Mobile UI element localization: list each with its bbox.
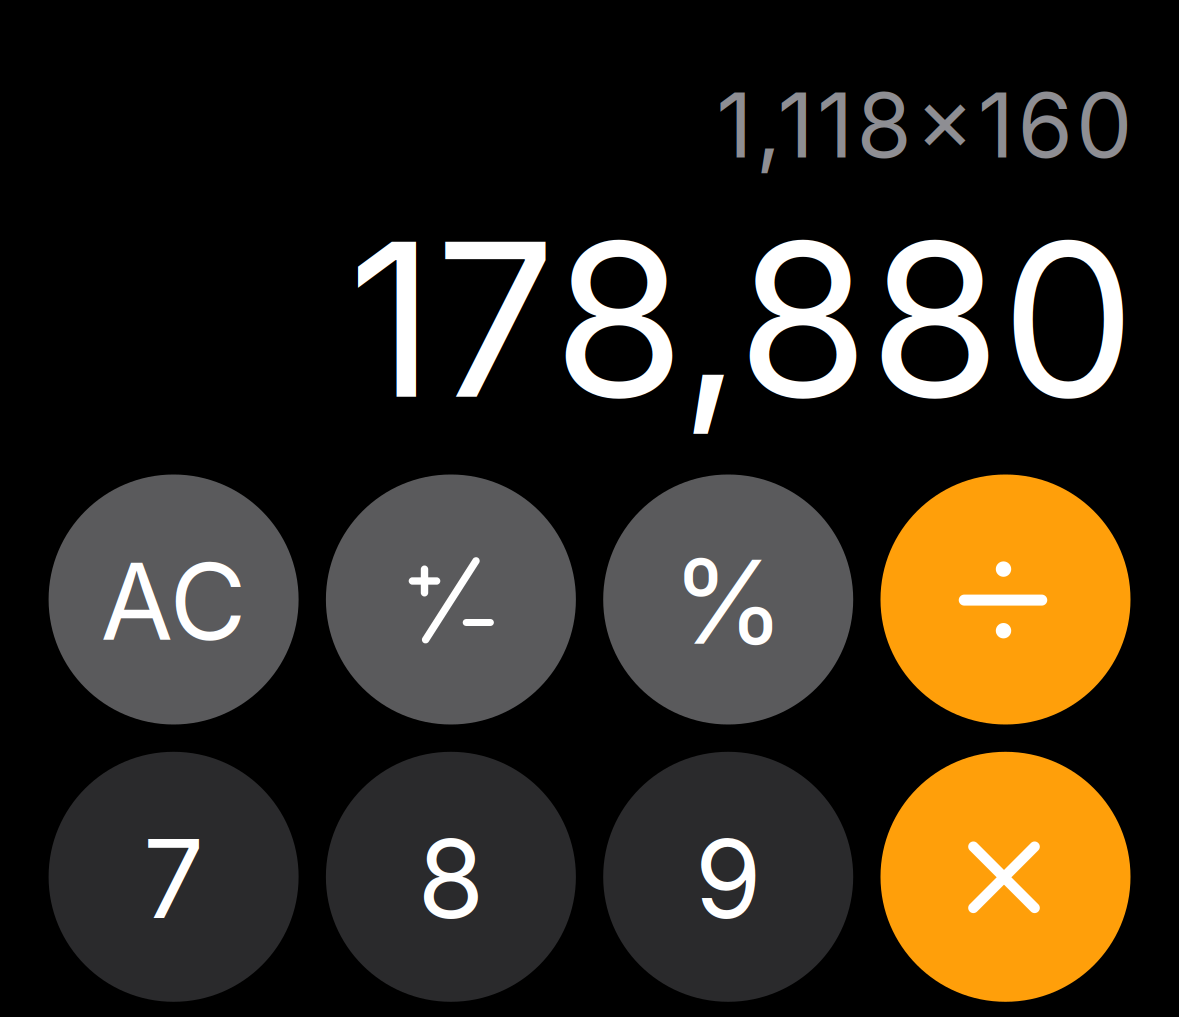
staticText: 7 — [143, 813, 204, 944]
staticText: 9 — [695, 813, 762, 944]
button[interactable]: Plus minus — [326, 474, 576, 724]
button[interactable]: Divide — [880, 474, 1130, 724]
staticText: AC — [101, 538, 247, 665]
button[interactable]: Multiply — [880, 752, 1130, 1002]
staticText: 178,880 — [348, 190, 1136, 448]
staticText: % — [671, 531, 785, 672]
staticText: 8 — [417, 813, 484, 944]
button[interactable]: % — [603, 474, 853, 724]
button[interactable]: AC — [49, 474, 299, 724]
button[interactable]: 8 — [326, 752, 576, 1002]
button[interactable]: 9 — [603, 752, 853, 1002]
button[interactable]: 7 — [49, 752, 299, 1002]
staticText: 1,118×160 — [716, 71, 1132, 179]
